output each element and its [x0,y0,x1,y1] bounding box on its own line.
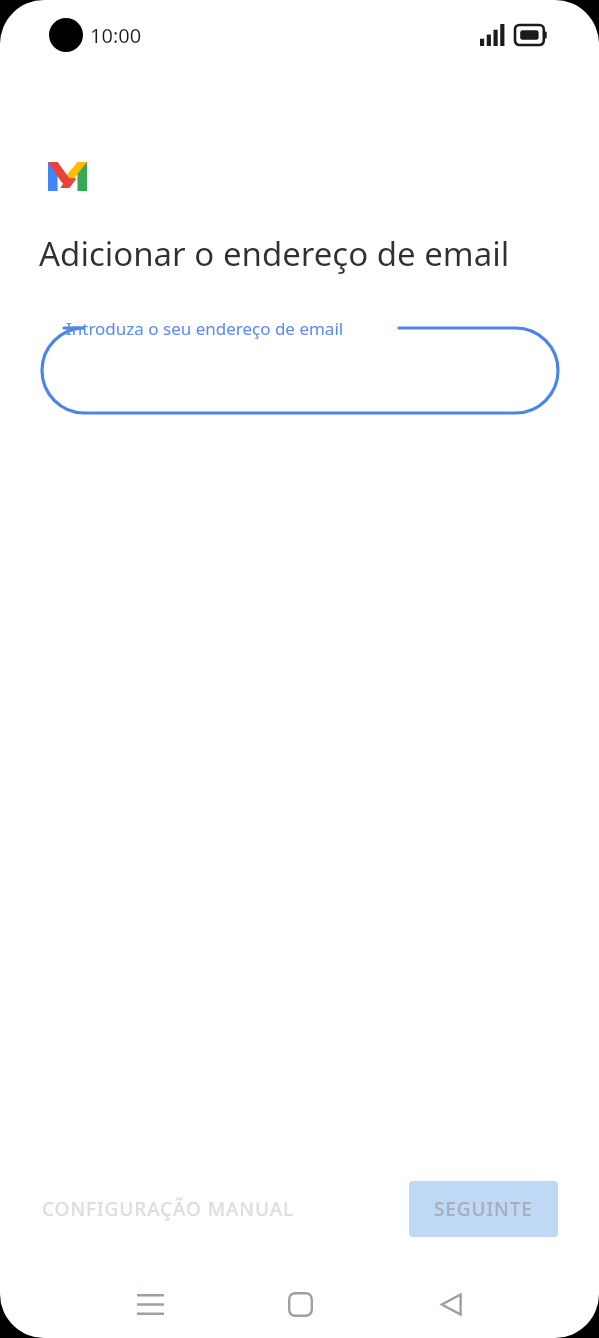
staticText: Adicionar o endereço de email [39,231,510,276]
button[interactable]: CONFIGURAÇÃO MANUAL [26,1184,311,1234]
button[interactable]: Recent apps [118,1272,182,1336]
staticText: CONFIGURAÇÃO MANUAL [42,1196,295,1222]
button[interactable]: Introduza o seu endereço de email [42,328,558,413]
button[interactable]: Home [268,1272,332,1336]
button[interactable]: Back [419,1272,483,1336]
staticText: SEGUINTE [434,1196,533,1222]
staticText: 10:00 [90,22,142,49]
staticText: Introduza o seu endereço de email [66,317,344,340]
button[interactable]: SEGUINTE [409,1181,558,1237]
